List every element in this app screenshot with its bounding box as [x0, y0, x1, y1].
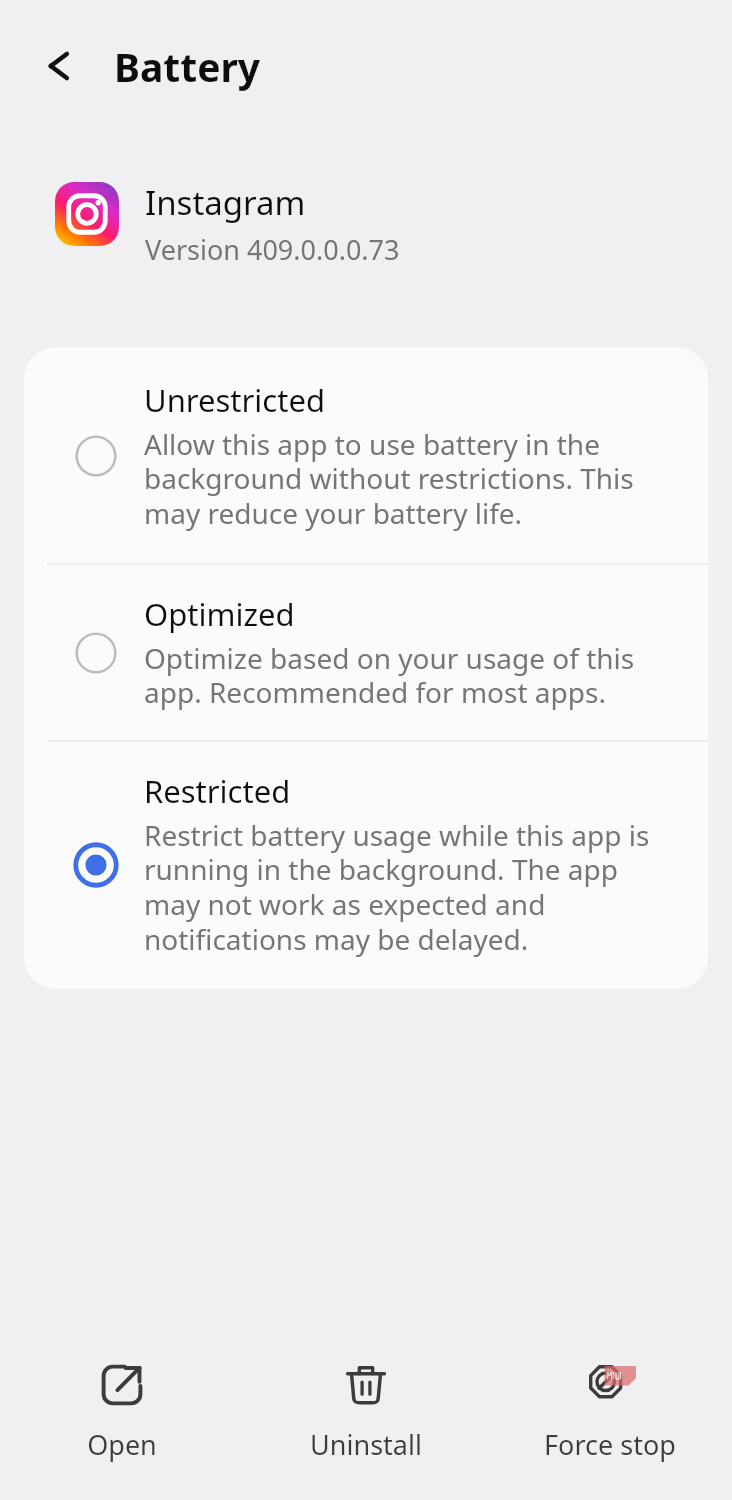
staticText: Instagram: [145, 180, 306, 225]
other: Uninstall: [343, 1362, 389, 1408]
button[interactable]: Restricted: [24, 742, 708, 989]
staticText: Uninstall: [310, 1426, 422, 1463]
button[interactable]: Open: [0, 1340, 244, 1463]
staticText: Optimized: [144, 593, 295, 635]
button[interactable]: Unrestricted: [24, 347, 708, 563]
staticText: Restricted: [144, 770, 291, 812]
other: Open: [99, 1362, 145, 1408]
staticText: Unrestricted: [144, 379, 325, 421]
staticText: Optimize based on your usage of this app…: [144, 639, 674, 712]
button[interactable]: Optimized: [24, 565, 708, 740]
staticText: Force stop: [544, 1426, 676, 1463]
staticText: Open: [87, 1426, 157, 1463]
staticText: Restrict battery usage while this app is…: [144, 816, 674, 959]
button[interactable]: Uninstall: [244, 1340, 488, 1463]
button[interactable]: Force stop: [488, 1340, 732, 1463]
staticText: Battery: [114, 40, 261, 93]
staticText: Version 409.0.0.0.73: [145, 231, 400, 268]
button[interactable]: Back: [34, 38, 90, 94]
staticText: Allow this app to use battery in the bac…: [144, 425, 674, 533]
other: Force stop: [583, 1358, 637, 1412]
